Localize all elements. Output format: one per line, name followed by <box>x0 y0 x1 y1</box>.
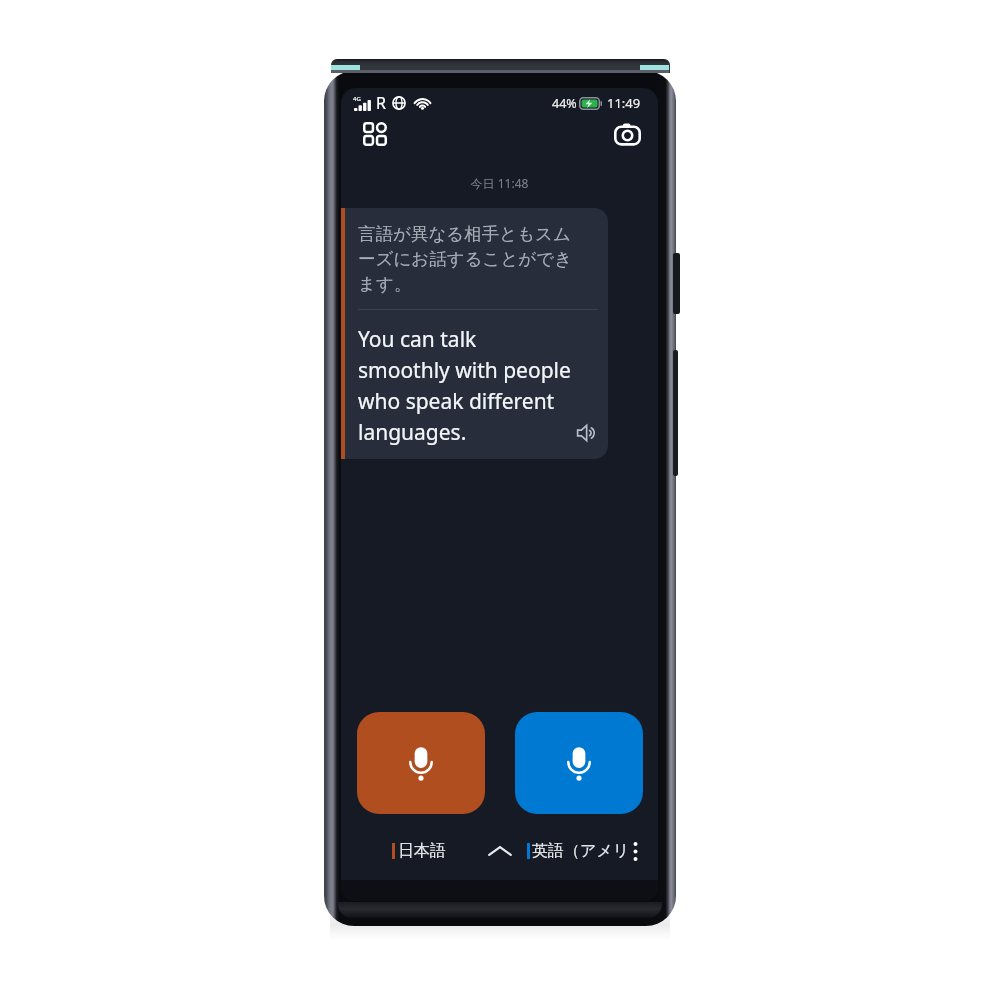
button[interactable]: More options <box>628 836 643 866</box>
staticText: 日本語 <box>398 841 446 861</box>
staticText: 44% <box>552 95 577 112</box>
staticText: 今日 11:48 <box>341 175 658 191</box>
button[interactable]: Swap languages <box>483 836 517 866</box>
staticText: 言語が異なる相手ともスム ーズにお話することができ ます。 <box>358 223 573 295</box>
staticText: 4G <box>353 95 361 103</box>
button[interactable]: Speak English <box>515 712 643 814</box>
staticText: 英語（アメリ <box>532 841 630 861</box>
button[interactable]: Play audio <box>575 421 599 445</box>
button[interactable]: 日本語 <box>392 836 446 866</box>
button[interactable]: Apps <box>356 115 394 153</box>
staticText: 11:49 <box>607 94 641 112</box>
staticText: You can talk smoothly with people who sp… <box>358 325 571 446</box>
button[interactable]: Camera <box>608 115 646 153</box>
button[interactable]: Speak Japanese <box>357 712 485 814</box>
staticText: R <box>376 92 386 114</box>
button[interactable]: 英語（アメリ <box>527 836 630 866</box>
